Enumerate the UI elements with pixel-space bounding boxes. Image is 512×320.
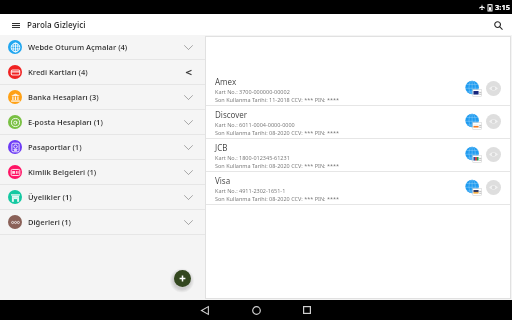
staticText: 3:15 xyxy=(495,2,510,12)
button[interactable]: Show password xyxy=(484,178,502,196)
button[interactable]: JCB xyxy=(206,139,510,171)
button[interactable]: Discover xyxy=(206,106,510,138)
button[interactable]: Show password xyxy=(484,79,502,97)
staticText: Son Kullanma Tarihi: 08-2020 CCV: *** PI… xyxy=(215,129,340,136)
button[interactable]: Open site xyxy=(464,145,482,163)
button[interactable]: Webde Oturum Açmalar (4) xyxy=(0,35,205,59)
button[interactable]: Üyelikler (1) xyxy=(0,185,205,209)
staticText: Son Kullanma Tarihi: 08-2020 CCV: *** PI… xyxy=(215,162,340,169)
button[interactable]: Expand xyxy=(179,88,197,106)
button[interactable]: Collapse xyxy=(179,63,197,81)
staticText: Banka Hesapları (3) xyxy=(28,92,99,102)
staticText: Visa xyxy=(215,175,231,186)
button[interactable]: Recents xyxy=(297,300,317,320)
staticText: Discover xyxy=(215,109,248,120)
button[interactable]: Search xyxy=(489,16,507,34)
button[interactable]: Open site xyxy=(464,79,482,97)
button[interactable]: Kimlik Belgeleri (1) xyxy=(0,160,205,184)
button[interactable]: Expand xyxy=(179,38,197,56)
staticText: Parola Gizleyici xyxy=(27,19,86,30)
button[interactable]: Expand xyxy=(179,163,197,181)
staticText: Kart No.: 4911-2302-1651-1 xyxy=(215,187,286,194)
button[interactable]: E-posta Hesapları (1) xyxy=(0,110,205,134)
button[interactable]: Expand xyxy=(179,113,197,131)
button[interactable]: Home xyxy=(246,300,266,320)
button[interactable]: Expand xyxy=(179,188,197,206)
staticText: Diğerleri (1) xyxy=(28,217,71,227)
button[interactable]: Banka Hesapları (3) xyxy=(0,85,205,109)
button[interactable]: Show password xyxy=(484,145,502,163)
staticText: Son Kullanma Tarihi: 08-2020 CCV: *** PI… xyxy=(215,195,340,202)
button[interactable]: Kredi Kartları (4) xyxy=(0,60,205,84)
button[interactable]: Back xyxy=(195,300,215,320)
button[interactable]: Menu xyxy=(9,18,23,32)
button[interactable]: Expand xyxy=(179,213,197,231)
button[interactable]: Expand xyxy=(179,138,197,156)
button[interactable]: Add xyxy=(174,270,191,287)
staticText: JCB xyxy=(215,142,228,153)
button[interactable]: Open site xyxy=(464,112,482,130)
staticText: Kimlik Belgeleri (1) xyxy=(28,167,97,177)
staticText: Kredi Kartları (4) xyxy=(28,67,88,77)
staticText: Son Kullanma Tarihi: 11-2018 CCV: *** PI… xyxy=(215,96,340,103)
button[interactable]: Pasaportlar (1) xyxy=(0,135,205,159)
staticText: Kart No.: 6011-0004-0000-0000 xyxy=(215,121,295,128)
staticText: Kart No.: 1800-012345-61231 xyxy=(215,154,290,161)
button[interactable]: Visa xyxy=(206,172,510,204)
button[interactable]: Amex xyxy=(206,73,510,105)
staticText: Pasaportlar (1) xyxy=(28,142,82,152)
staticText: E-posta Hesapları (1) xyxy=(28,117,103,127)
staticText: Webde Oturum Açmalar (4) xyxy=(28,42,128,52)
button[interactable]: Open site xyxy=(464,178,482,196)
staticText: Üyelikler (1) xyxy=(28,192,72,202)
button[interactable]: Show password xyxy=(484,112,502,130)
button[interactable]: Diğerleri (1) xyxy=(0,210,205,234)
staticText: Amex xyxy=(215,76,237,87)
staticText: Kart No.: 3700-000000-00002 xyxy=(215,88,290,95)
